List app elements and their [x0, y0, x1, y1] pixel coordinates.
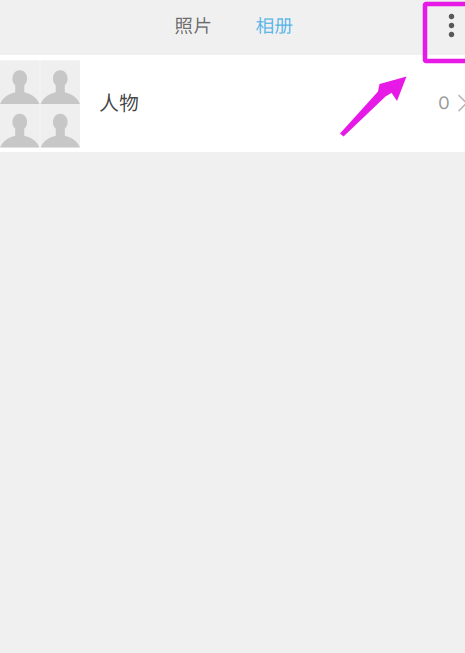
staticText: 人物: [99, 87, 139, 116]
button[interactable]: More options: [424, 0, 465, 55]
button[interactable]: 人物: [0, 55, 465, 152]
button[interactable]: 相册: [243, 4, 306, 50]
staticText: 照片: [174, 11, 212, 38]
button[interactable]: 照片: [162, 4, 225, 50]
staticText: 0: [438, 91, 450, 114]
staticText: 相册: [255, 11, 293, 38]
